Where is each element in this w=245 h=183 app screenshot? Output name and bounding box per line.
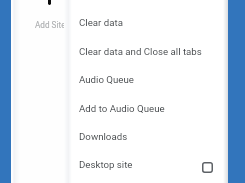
staticText: Add Site bbox=[35, 20, 66, 30]
staticText: Clear data and Close all tabs bbox=[79, 46, 202, 57]
button[interactable]: Downloads bbox=[69, 122, 228, 150]
staticText: Add to Audio Queue bbox=[79, 103, 165, 114]
button[interactable]: Add Site bbox=[30, 16, 66, 34]
button[interactable]: Add to Audio Queue bbox=[69, 94, 228, 122]
staticText: Audio Queue bbox=[79, 74, 134, 85]
button[interactable]: Audio Queue bbox=[69, 65, 228, 93]
other: Desktop site checkbox bbox=[202, 162, 213, 173]
staticText: Clear data bbox=[79, 17, 123, 28]
button[interactable]: Clear data and Close all tabs bbox=[69, 37, 228, 65]
button[interactable]: Desktop site bbox=[69, 150, 228, 178]
staticText: Downloads bbox=[79, 131, 128, 142]
staticText: Desktop site bbox=[79, 159, 133, 170]
button[interactable]: Clear data bbox=[69, 8, 228, 36]
